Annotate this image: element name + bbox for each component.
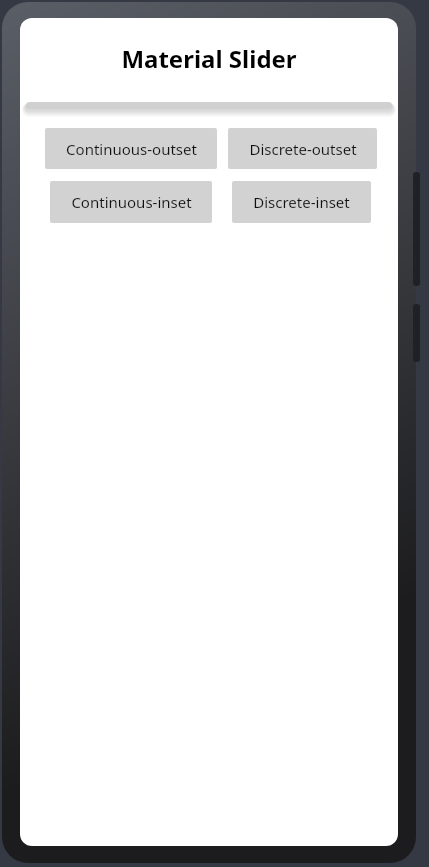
button[interactable]: Discrete-inset (232, 181, 371, 223)
staticText: Continuous-outset (66, 139, 197, 159)
button[interactable]: Continuous-outset (45, 128, 217, 169)
button[interactable]: Continuous-inset (50, 181, 212, 223)
staticText: Discrete-inset (253, 192, 350, 212)
button[interactable]: Discrete-outset (228, 128, 377, 169)
staticText: Continuous-inset (71, 192, 192, 212)
staticText: Discrete-outset (249, 139, 357, 159)
staticText: Material Slider (121, 42, 297, 75)
